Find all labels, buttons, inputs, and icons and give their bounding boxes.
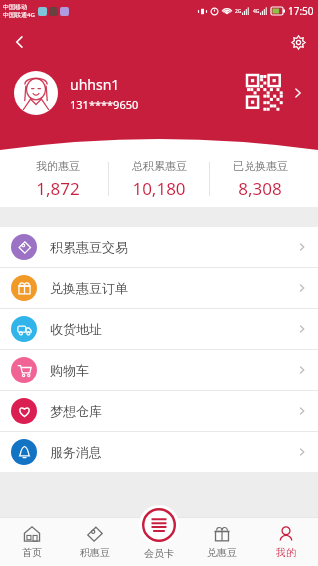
staticText: 收货地址	[50, 321, 102, 337]
button[interactable]: 已兑换惠豆	[210, 159, 310, 200]
button[interactable]: Settings	[278, 22, 318, 62]
staticText: 积惠豆	[80, 546, 110, 559]
staticText: 购物车	[50, 362, 89, 378]
button[interactable]: uhhsn1	[0, 63, 318, 123]
staticText: uhhsn1	[70, 75, 120, 94]
button[interactable]: 服务消息	[0, 432, 318, 472]
staticText: 10,180	[132, 177, 186, 200]
staticText: 首页	[22, 546, 42, 559]
button[interactable]: 积累惠豆交易	[0, 227, 318, 268]
staticText: 总积累惠豆	[132, 159, 187, 173]
button[interactable]: 会员卡	[127, 505, 191, 566]
button[interactable]: 购物车	[0, 350, 318, 391]
button[interactable]: 首页	[0, 517, 63, 566]
button[interactable]: 我的惠豆	[8, 159, 108, 200]
staticText: 2G	[235, 8, 242, 15]
staticText: 会员卡	[144, 547, 174, 560]
staticText: 服务消息	[50, 444, 102, 460]
staticText: 131****9650	[70, 97, 139, 112]
staticText: 1,872	[36, 177, 80, 200]
button[interactable]: 兑惠豆	[190, 517, 254, 566]
staticText: 中国联通4G	[3, 11, 35, 19]
button[interactable]: 积惠豆	[63, 517, 126, 566]
button[interactable]: 我的	[254, 517, 318, 566]
staticText: 梦想仓库	[50, 403, 102, 419]
staticText: 我的	[276, 546, 296, 559]
staticText: 17:50	[288, 4, 314, 18]
button[interactable]: 梦想仓库	[0, 391, 318, 432]
button[interactable]: 收货地址	[0, 309, 318, 350]
staticText: 已兑换惠豆	[233, 159, 288, 173]
staticText: 4G	[253, 8, 260, 15]
button[interactable]: 兑换惠豆订单	[0, 268, 318, 309]
button[interactable]: 总积累惠豆	[109, 159, 209, 200]
staticText: 我的惠豆	[36, 159, 80, 173]
staticText: 兑惠豆	[207, 546, 237, 559]
staticText: 积累惠豆交易	[50, 239, 128, 255]
staticText: 8,308	[238, 177, 282, 200]
button[interactable]: Back	[0, 22, 40, 62]
button[interactable]: QR code	[244, 72, 286, 114]
staticText: 中国移动	[3, 3, 27, 11]
staticText: 兑换惠豆订单	[50, 280, 128, 296]
